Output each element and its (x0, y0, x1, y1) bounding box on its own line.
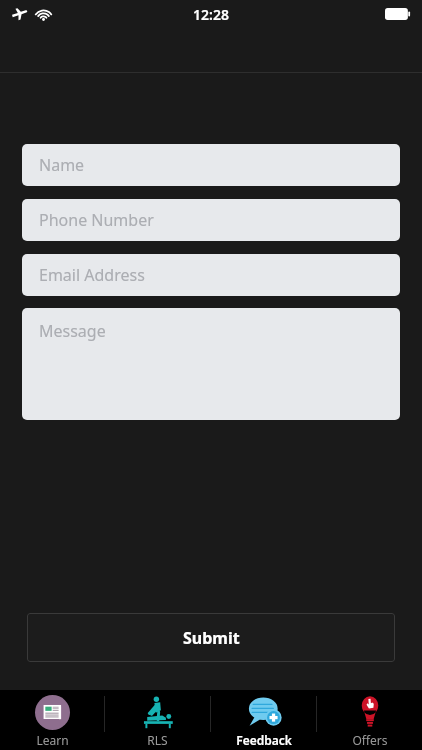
button[interactable]: Message (22, 308, 400, 420)
button[interactable]: Phone Number (22, 199, 400, 241)
button[interactable]: Learn (0, 690, 104, 750)
button[interactable]: Submit (27, 613, 395, 662)
other: Offers (352, 694, 388, 730)
staticText: Email Address (39, 264, 145, 286)
staticText: Name (39, 154, 85, 176)
staticText: Submit (183, 627, 240, 649)
button[interactable]: Name (22, 144, 400, 186)
button[interactable]: Offers (317, 690, 422, 750)
other: RLS (140, 694, 176, 730)
staticText: 12:28 (193, 5, 229, 24)
button[interactable]: Email Address (22, 254, 400, 296)
staticText: RLS (147, 732, 168, 748)
staticText: Feedback (236, 732, 292, 748)
other: Learn (35, 695, 70, 730)
staticText: Phone Number (39, 209, 154, 231)
button[interactable]: Feedback (211, 690, 316, 750)
staticText: Learn (36, 732, 69, 748)
other: Feedback (246, 694, 282, 730)
staticText: Offers (352, 732, 388, 748)
staticText: Message (39, 320, 106, 342)
button[interactable]: RLS (105, 690, 210, 750)
